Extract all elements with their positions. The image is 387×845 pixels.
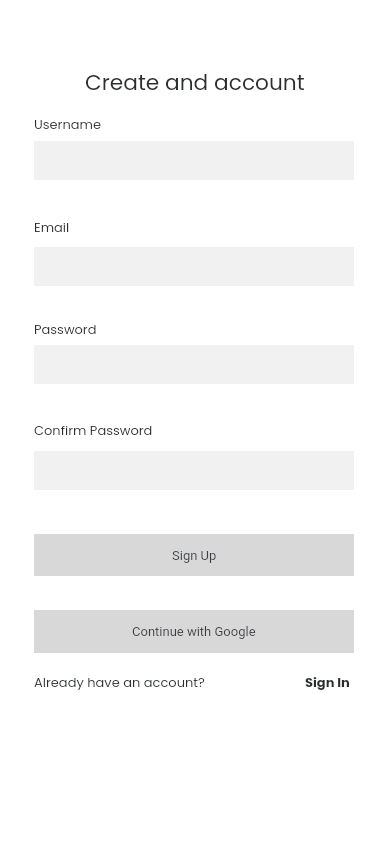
staticText: Already have an account? bbox=[34, 673, 205, 691]
button[interactable]: Continue with Google bbox=[34, 610, 354, 653]
staticText: Username bbox=[34, 115, 102, 133]
staticText: Sign In bbox=[305, 673, 350, 691]
staticText: Continue with Google bbox=[132, 624, 256, 639]
staticText: Create and account bbox=[85, 67, 305, 97]
staticText: Sign Up bbox=[172, 548, 217, 563]
button[interactable]: Sign Up bbox=[34, 534, 354, 576]
button[interactable]: Sign In bbox=[305, 673, 350, 691]
staticText: Confirm Password bbox=[34, 421, 153, 439]
staticText: Email bbox=[34, 218, 70, 236]
staticText: Password bbox=[34, 320, 97, 338]
